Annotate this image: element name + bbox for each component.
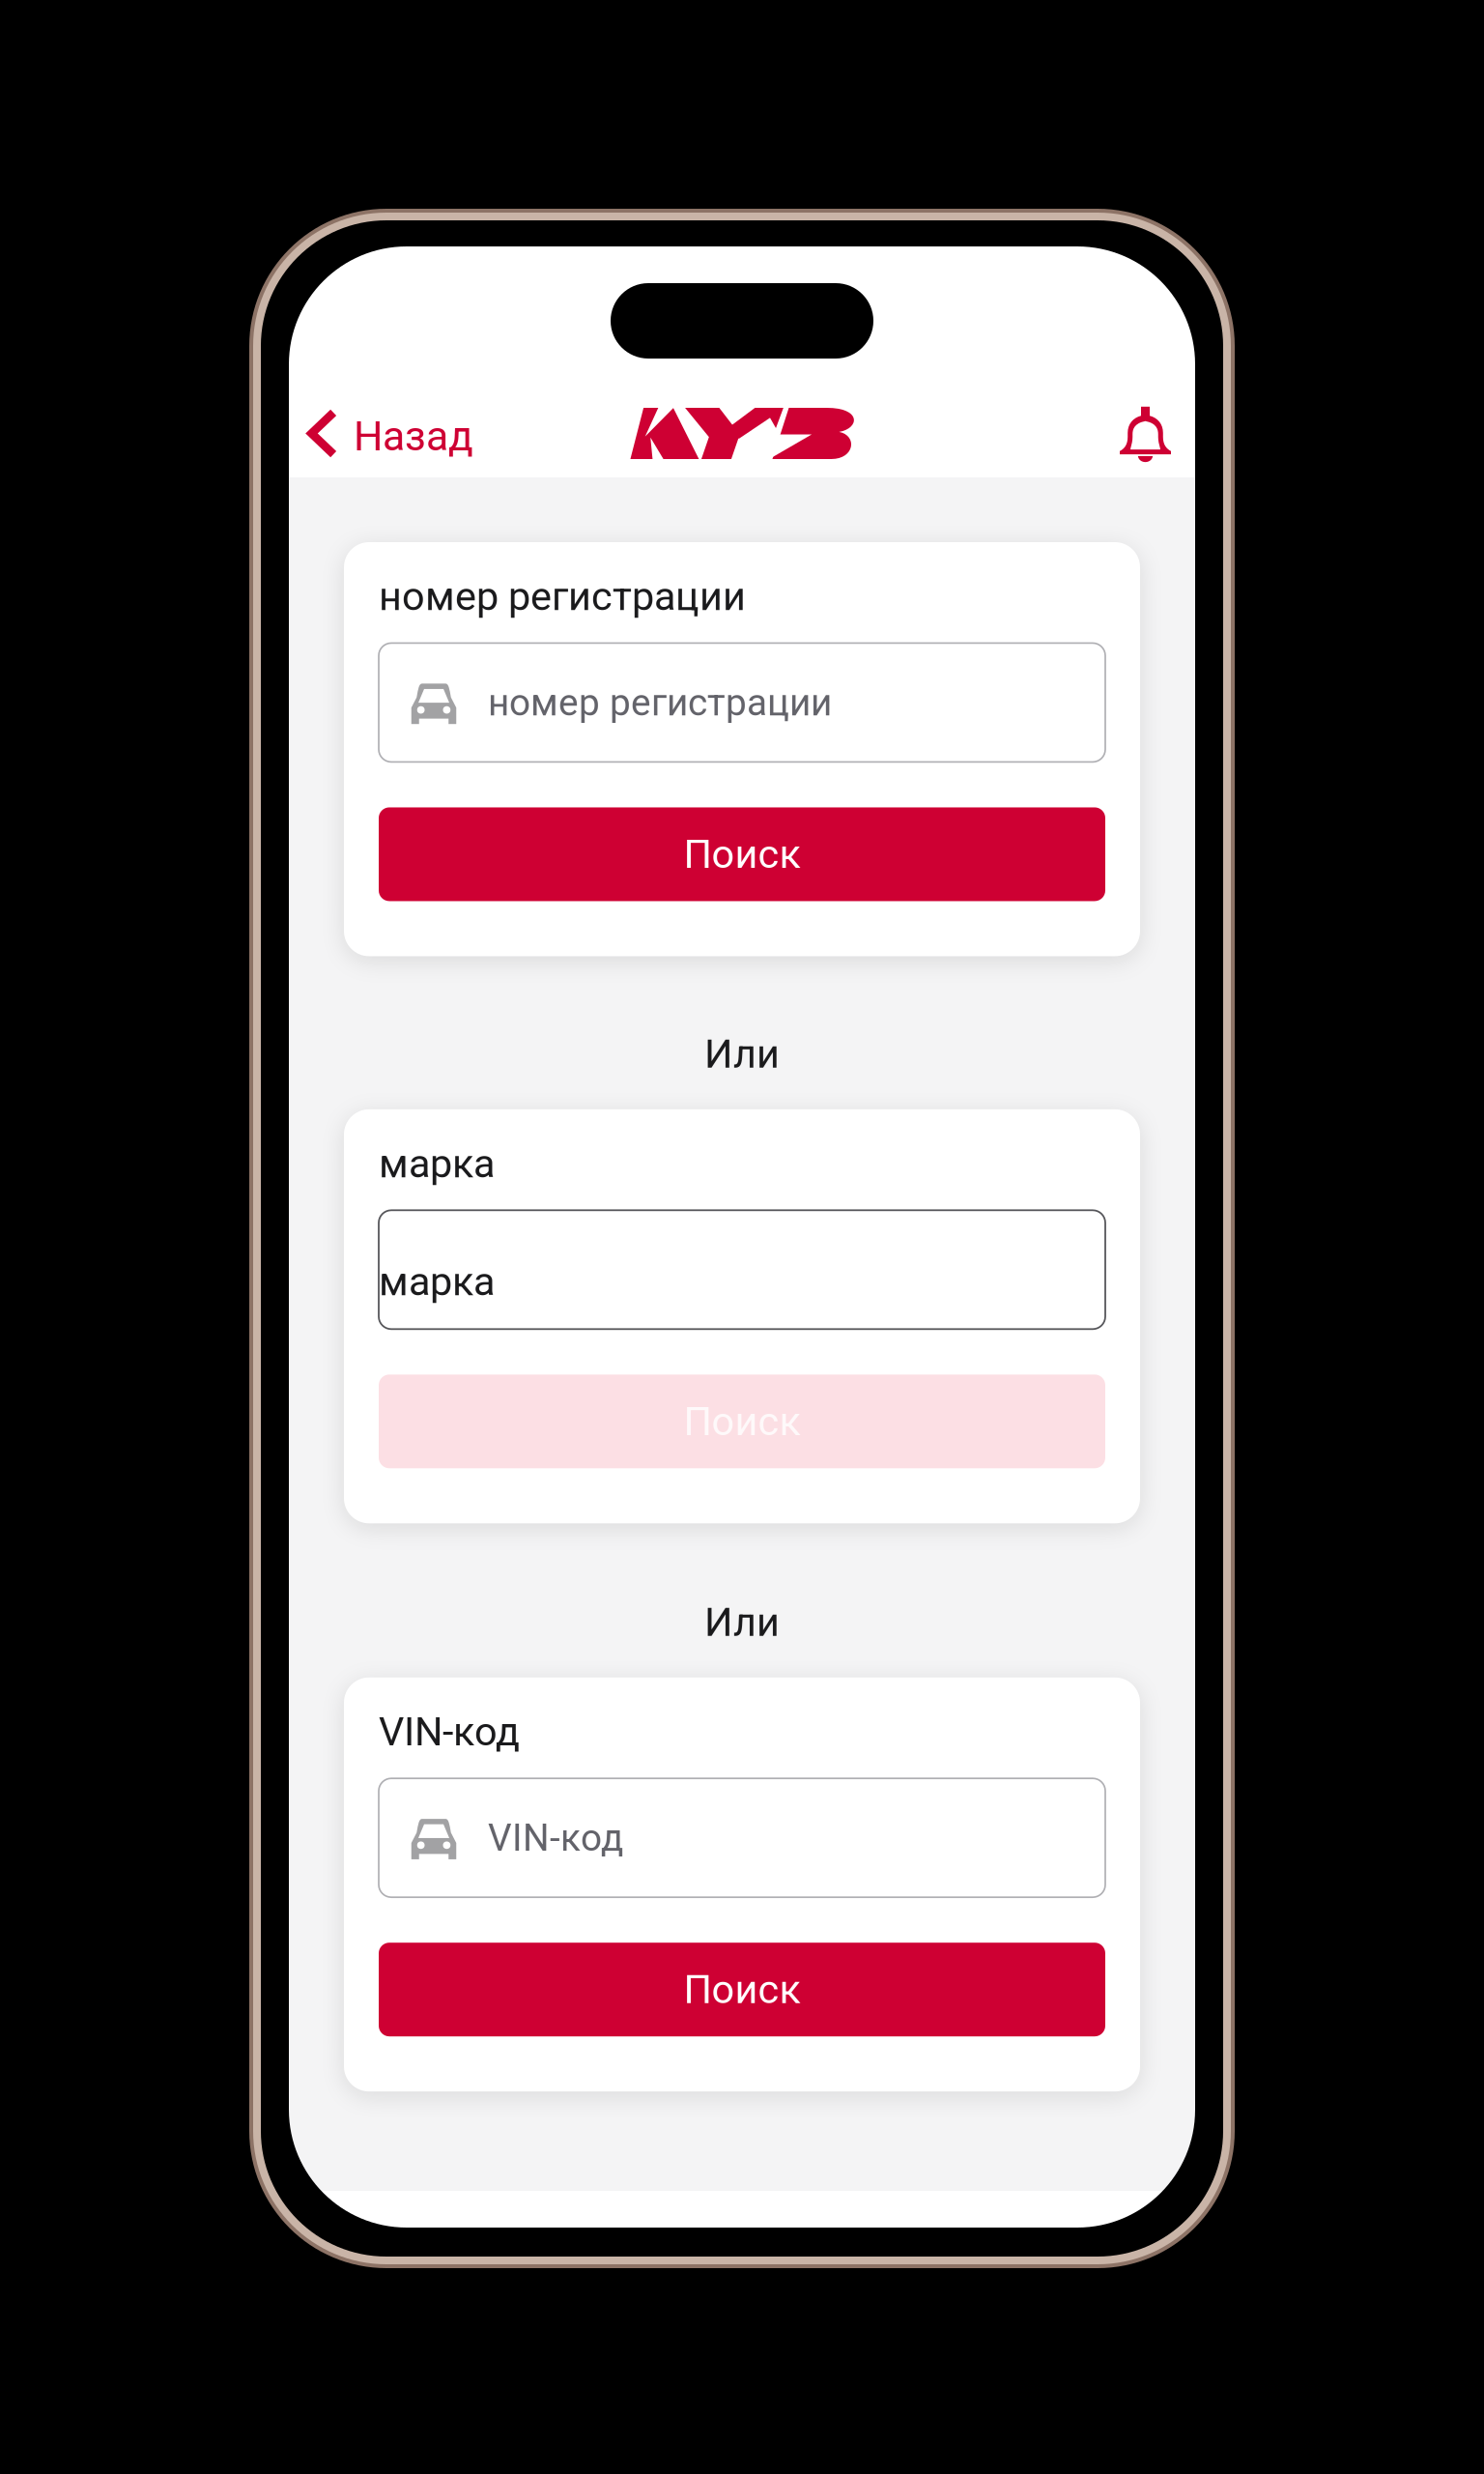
- button[interactable]: Поиск: [379, 1375, 1105, 1468]
- staticText: VIN-код: [379, 1708, 520, 1755]
- staticText: Или: [704, 1031, 780, 1077]
- staticText: Или: [704, 1599, 780, 1645]
- staticText: Поиск: [684, 831, 800, 878]
- staticText: Назад: [354, 412, 473, 460]
- staticText: Поиск: [684, 1398, 800, 1445]
- button[interactable]: Поиск: [379, 807, 1105, 901]
- button[interactable]: Поиск: [379, 1943, 1105, 2036]
- button[interactable]: Назад: [289, 394, 493, 473]
- button[interactable]: Уведомления: [1106, 390, 1195, 476]
- staticText: номер регистрации: [488, 681, 832, 724]
- staticText: VIN-код: [488, 1816, 623, 1860]
- staticText: марка: [379, 1258, 495, 1305]
- staticText: номер регистрации: [379, 573, 746, 620]
- staticText: Поиск: [684, 1966, 800, 2013]
- staticText: марка: [379, 1140, 495, 1187]
